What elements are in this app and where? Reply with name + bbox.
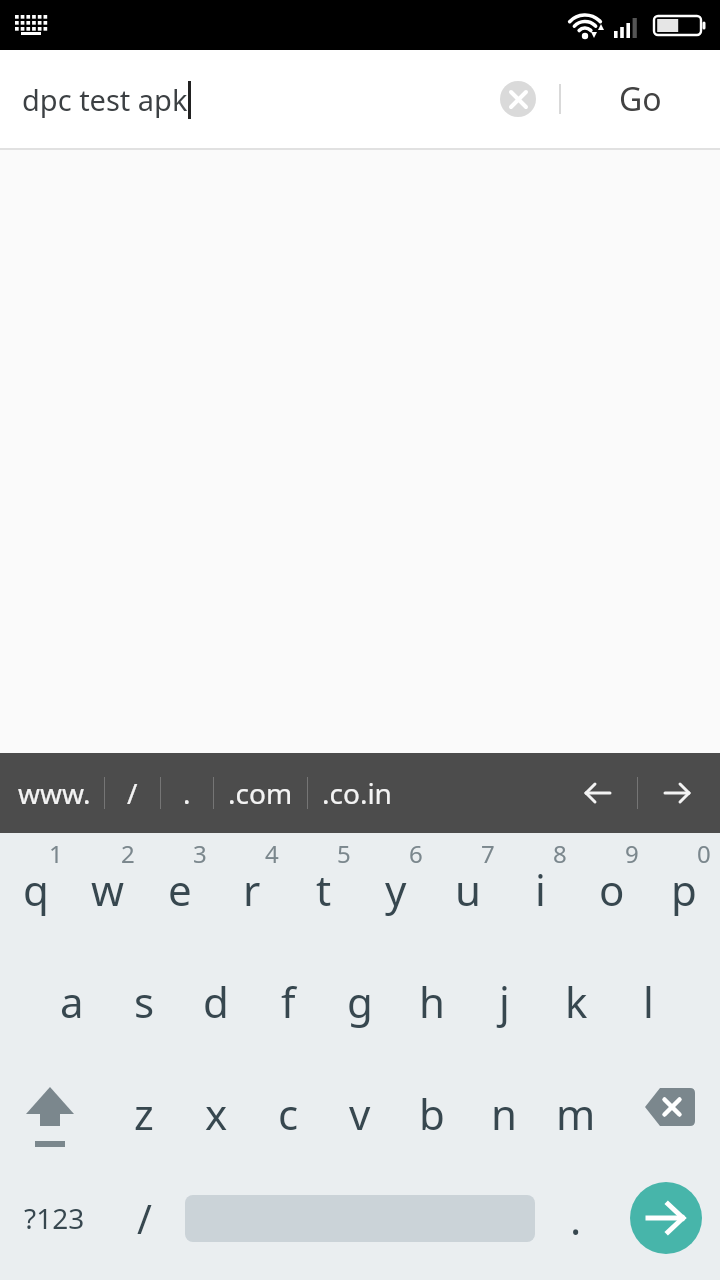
button[interactable]: b	[396, 1057, 468, 1169]
staticText: h	[419, 973, 445, 1030]
staticText: f	[281, 973, 296, 1030]
button[interactable]: .co.in	[322, 774, 392, 812]
button[interactable]: n	[468, 1057, 540, 1169]
staticText: /	[127, 774, 138, 812]
button[interactable]: x	[180, 1057, 252, 1169]
staticText: s	[134, 973, 155, 1030]
button[interactable]: f	[252, 945, 324, 1057]
staticText: q	[23, 861, 49, 918]
staticText: o	[599, 861, 625, 918]
staticText: g	[347, 973, 373, 1030]
button[interactable]	[630, 1182, 702, 1254]
button[interactable]: g	[324, 945, 396, 1057]
button[interactable]: s	[108, 945, 180, 1057]
staticText: 9	[625, 837, 639, 870]
staticText: x	[205, 1085, 228, 1142]
staticText: www.	[18, 774, 91, 812]
button[interactable]: .	[183, 774, 191, 812]
button[interactable]: .com	[228, 774, 293, 812]
staticText: u	[455, 861, 481, 918]
button[interactable]: c	[252, 1057, 324, 1169]
staticText: r	[243, 861, 261, 918]
button[interactable]: d	[180, 945, 252, 1057]
staticText: l	[643, 973, 654, 1030]
button[interactable]	[612, 1057, 720, 1169]
staticText: .com	[228, 774, 293, 812]
staticText: ?123	[24, 1199, 85, 1237]
button[interactable]: p	[648, 833, 720, 945]
staticText: 0	[697, 837, 711, 870]
button[interactable]: h	[396, 945, 468, 1057]
button[interactable]: w	[72, 833, 144, 945]
staticText: 2	[121, 837, 135, 870]
button[interactable]: Go	[561, 57, 720, 141]
staticText: d	[203, 973, 229, 1030]
button[interactable]: r	[216, 833, 288, 945]
staticText: y	[385, 861, 407, 918]
staticText: .	[570, 1190, 582, 1247]
staticText: 6	[409, 837, 423, 870]
button[interactable]	[0, 1057, 108, 1169]
staticText: c	[278, 1085, 299, 1142]
button[interactable]: z	[108, 1057, 180, 1169]
button[interactable]: dpc test apk	[22, 50, 500, 148]
staticText: p	[671, 861, 697, 918]
button[interactable]	[662, 778, 692, 808]
button[interactable]: www.	[18, 774, 91, 812]
button[interactable]: ?123	[0, 1169, 108, 1267]
staticText: n	[491, 1085, 517, 1142]
staticText: 7	[481, 837, 495, 870]
staticText: z	[134, 1085, 154, 1142]
button[interactable]	[500, 81, 536, 117]
button[interactable]: y	[360, 833, 432, 945]
button[interactable]: k	[540, 945, 612, 1057]
button[interactable]: l	[612, 945, 684, 1057]
staticText: .	[183, 774, 191, 812]
button[interactable]: v	[324, 1057, 396, 1169]
staticText: v	[349, 1085, 371, 1142]
button[interactable]: a	[36, 945, 108, 1057]
staticText: .co.in	[322, 774, 392, 812]
staticText: 5	[337, 837, 351, 870]
button[interactable]: i	[504, 833, 576, 945]
button[interactable]: .	[540, 1169, 612, 1267]
staticText: j	[499, 973, 510, 1030]
staticText: 8	[553, 837, 567, 870]
button[interactable]: j	[468, 945, 540, 1057]
staticText: a	[60, 973, 84, 1030]
staticText: m	[556, 1085, 596, 1142]
button[interactable]: e	[144, 833, 216, 945]
button[interactable]: q	[0, 833, 72, 945]
staticText: t	[316, 861, 332, 918]
staticText: b	[419, 1085, 445, 1142]
staticText: e	[168, 861, 192, 918]
staticText: /	[137, 1191, 152, 1245]
staticText: 4	[265, 837, 279, 870]
staticText: k	[565, 973, 588, 1030]
staticText: Go	[619, 77, 662, 121]
button[interactable]: /	[108, 1169, 180, 1267]
button[interactable]: t	[288, 833, 360, 945]
button[interactable]: m	[540, 1057, 612, 1169]
button[interactable]: u	[432, 833, 504, 945]
staticText: dpc test apk	[22, 80, 188, 119]
staticText: i	[535, 861, 546, 918]
staticText: 1	[49, 837, 63, 870]
button[interactable]	[583, 778, 613, 808]
button[interactable]: /	[127, 774, 138, 812]
button[interactable]: o	[576, 833, 648, 945]
staticText: 3	[193, 837, 207, 870]
staticText: w	[91, 861, 125, 918]
